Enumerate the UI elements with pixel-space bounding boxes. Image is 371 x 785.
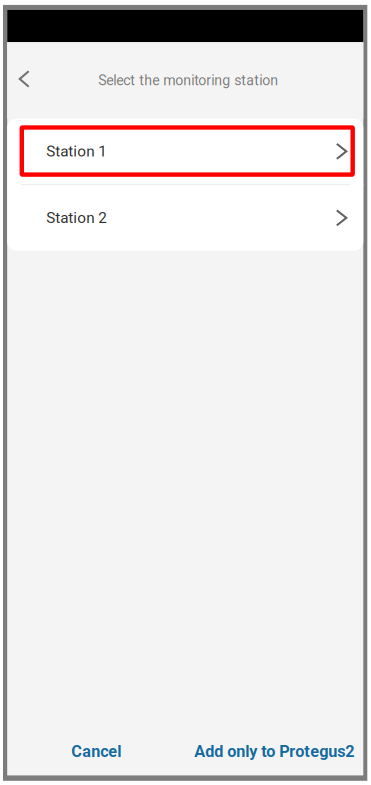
staticText: Station 1 [46, 142, 107, 160]
button[interactable]: Add only to Protegus2 [185, 728, 363, 774]
staticText: Cancel [71, 742, 121, 761]
staticText: Add only to Protegus2 [194, 742, 354, 761]
staticText: Station 2 [46, 209, 107, 227]
button[interactable]: Station 2 [7, 185, 363, 250]
button[interactable]: Back [7, 55, 43, 103]
button[interactable]: Station 1 [7, 119, 363, 184]
staticText: Select the monitoring station [98, 72, 278, 89]
button[interactable]: Cancel [7, 728, 185, 774]
